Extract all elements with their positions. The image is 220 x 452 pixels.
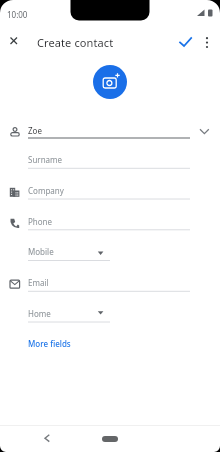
- staticText: Create contact: [37, 35, 114, 50]
- button[interactable]: [176, 33, 195, 50]
- button[interactable]: [4, 32, 23, 51]
- staticText: Surname: [28, 154, 63, 165]
- button[interactable]: More fields: [24, 337, 72, 351]
- staticText: 10:00: [7, 9, 28, 20]
- button[interactable]: [102, 436, 118, 442]
- staticText: Mobile: [28, 246, 54, 257]
- staticText: Company: [28, 185, 64, 196]
- button[interactable]: [93, 65, 127, 99]
- staticText: Email: [28, 277, 49, 288]
- button[interactable]: [200, 33, 214, 51]
- staticText: Zoe: [28, 125, 42, 136]
- staticText: More fields: [28, 338, 71, 349]
- staticText: Home: [28, 308, 51, 319]
- staticText: Phone: [28, 216, 53, 227]
- button[interactable]: Zoe: [24, 121, 196, 139]
